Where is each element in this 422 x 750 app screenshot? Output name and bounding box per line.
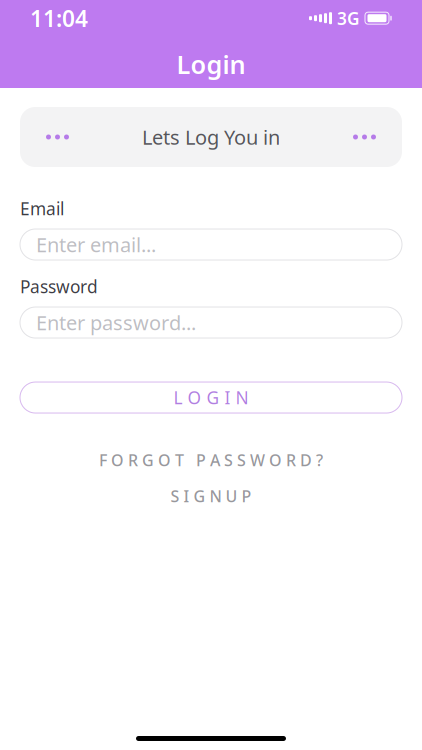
staticText: 3G	[337, 7, 360, 30]
staticText: S I G N U P	[170, 485, 251, 507]
button[interactable]: L O G I N	[20, 382, 402, 413]
staticText: Password	[20, 275, 98, 298]
staticText: F O R G O T P A S S W O R D ?	[99, 449, 323, 471]
staticText: L O G I N	[173, 386, 248, 409]
staticText: Login	[176, 47, 245, 81]
staticText: 11:04	[30, 3, 88, 33]
button[interactable]: S I G N U P	[20, 487, 402, 505]
staticText: Enter email...	[36, 231, 156, 258]
staticText: Lets Log You in	[142, 124, 280, 150]
staticText: Email	[20, 197, 64, 220]
staticText: Enter password...	[36, 309, 196, 336]
button[interactable]: F O R G O T P A S S W O R D ?	[20, 451, 402, 469]
